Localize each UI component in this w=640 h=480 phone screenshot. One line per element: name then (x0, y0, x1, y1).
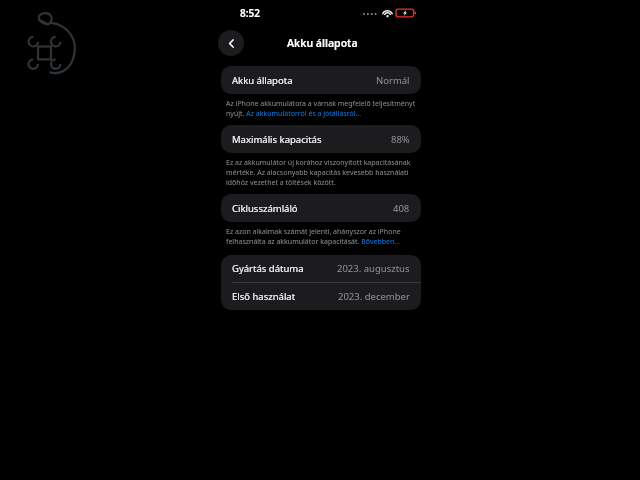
button[interactable]: Ciklusszámláló (221, 194, 421, 222)
staticText: Akku állapota (232, 74, 293, 87)
button[interactable]: Az iPhone akkumulátora a várnak megfelel… (226, 99, 419, 119)
staticText: Ciklusszámláló (232, 202, 298, 215)
staticText: 88% (391, 133, 410, 146)
staticText: 2023. augusztus (337, 262, 410, 275)
staticText: Akku állapota (287, 36, 358, 50)
staticText: 2023. december (338, 290, 410, 303)
button[interactable]: Ez az akkumulátor új korához viszonyítot… (226, 158, 419, 188)
staticText: Ez azon alkalmak számát jelenti, ahánysz… (226, 227, 419, 247)
button[interactable]: Maximális kapacitás (221, 125, 421, 153)
button[interactable]: Gyártás dátuma (221, 255, 421, 282)
staticText: Első használat (232, 290, 296, 303)
staticText: Ez az akkumulátor új korához viszonyítot… (226, 158, 419, 188)
button[interactable]: Vissza (218, 30, 244, 56)
button[interactable]: Akku állapota (221, 66, 421, 94)
button[interactable]: Ez azon alkalmak számát jelenti, ahánysz… (226, 227, 419, 247)
staticText: Normál (376, 74, 410, 87)
staticText: 408 (393, 202, 410, 215)
staticText: Az iPhone akkumulátora a várnak megfelel… (226, 99, 419, 119)
staticText: Gyártás dátuma (232, 262, 304, 275)
staticText: 8:52 (240, 6, 260, 20)
staticText: Maximális kapacitás (232, 133, 322, 146)
button[interactable]: Első használat (221, 283, 421, 310)
